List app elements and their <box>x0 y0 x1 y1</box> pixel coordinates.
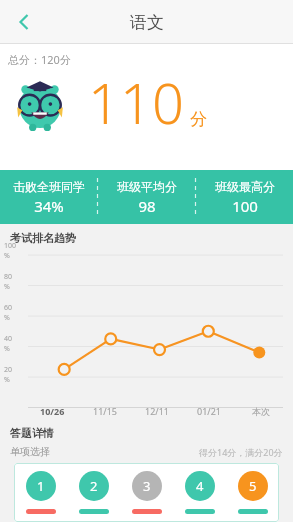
button[interactable]: 击败全班同学 <box>0 179 97 216</box>
staticText: 单项选择 <box>10 445 50 458</box>
staticText: 考试排名趋势 <box>10 231 76 245</box>
staticText: 4 <box>196 477 204 495</box>
staticText: 1 <box>37 477 45 495</box>
staticText: 总分：120分 <box>8 52 71 67</box>
button[interactable]: 3 <box>132 471 162 501</box>
staticText: % <box>4 282 10 292</box>
button[interactable]: 10 <box>238 509 268 514</box>
staticText: 分 <box>190 109 207 130</box>
staticText: 20 <box>4 365 13 375</box>
staticText: 11/15 <box>93 405 117 417</box>
staticText: 本次 <box>252 406 270 417</box>
button[interactable]: 1 <box>26 471 56 501</box>
button[interactable]: 班级最高分 <box>196 179 293 216</box>
button[interactable]: 2 <box>79 471 109 501</box>
button[interactable]: 4 <box>185 471 215 501</box>
staticText: 100 <box>4 241 17 251</box>
staticText: 60 <box>4 303 13 313</box>
staticText: 98 <box>138 196 156 216</box>
staticText: 100 <box>232 196 258 216</box>
staticText: 12/11 <box>145 405 169 417</box>
staticText: % <box>4 375 10 385</box>
staticText: 语文 <box>130 12 164 33</box>
staticText: 答题详情 <box>10 426 54 440</box>
button[interactable]: Back <box>6 4 42 40</box>
staticText: % <box>4 251 10 261</box>
staticText: 5 <box>249 477 257 495</box>
staticText: 2 <box>90 477 98 495</box>
button[interactable]: 8 <box>132 509 162 514</box>
button[interactable]: 6 <box>26 509 56 514</box>
staticText: 40 <box>4 334 13 344</box>
staticText: 80 <box>4 272 13 282</box>
button[interactable]: 7 <box>79 509 109 514</box>
staticText: 班级最高分 <box>215 179 275 194</box>
staticText: % <box>4 313 10 323</box>
staticText: 110 <box>88 64 184 140</box>
button[interactable]: 班级平均分 <box>98 179 195 216</box>
staticText: % <box>4 344 10 354</box>
staticText: 10/26 <box>40 405 65 417</box>
staticText: 3 <box>143 477 151 495</box>
staticText: 击败全班同学 <box>13 179 85 194</box>
staticText: 34% <box>34 196 64 216</box>
staticText: 得分14分，满分20分 <box>199 446 283 458</box>
staticText: 01/21 <box>197 405 221 417</box>
button[interactable]: 9 <box>185 509 215 514</box>
staticText: 班级平均分 <box>117 179 177 194</box>
button[interactable]: 5 <box>238 471 268 501</box>
